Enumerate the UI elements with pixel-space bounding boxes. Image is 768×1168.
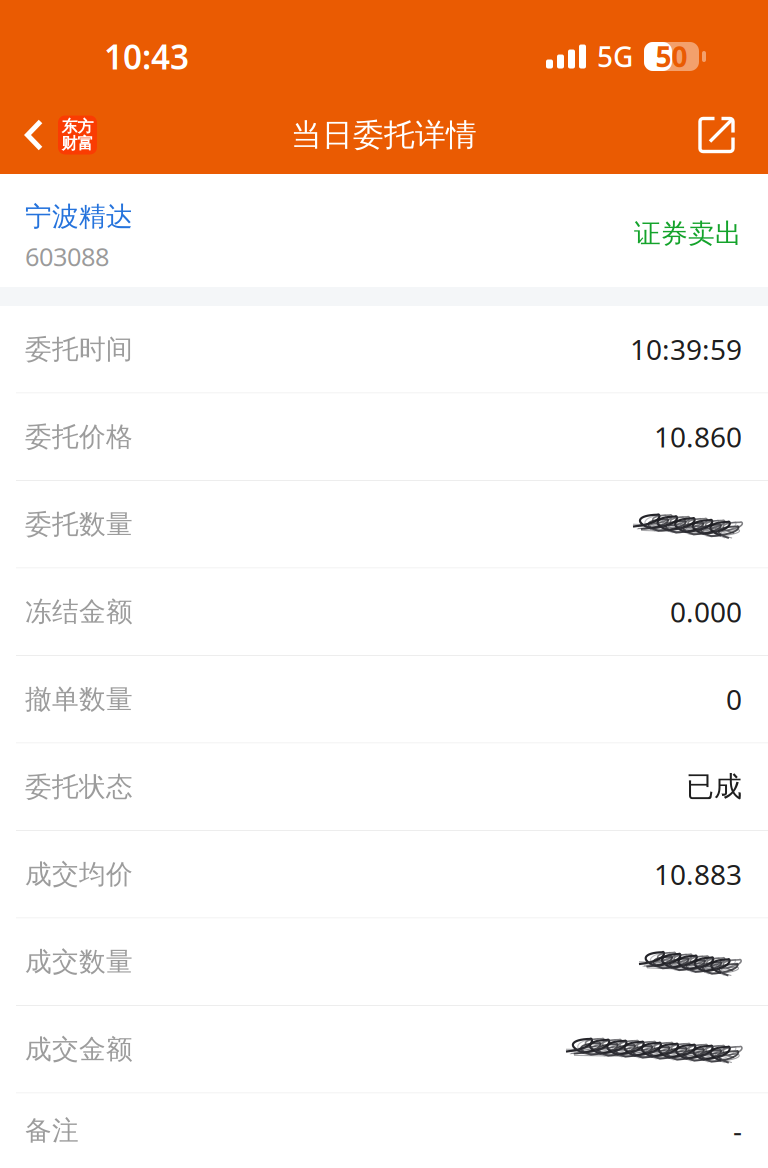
button[interactable]: Share — [682, 96, 768, 174]
staticText: 委托价格 — [25, 420, 133, 453]
staticText: 委托时间 — [25, 333, 133, 366]
button[interactable]: 委托价格 — [0, 393, 768, 481]
staticText: 备注 — [25, 1114, 79, 1147]
staticText: 0.000 — [670, 593, 742, 630]
staticText: 成交数量 — [25, 945, 133, 978]
staticText: 成交均价 — [25, 858, 133, 891]
button[interactable]: 成交数量 — [0, 918, 768, 1006]
staticText: 10.860 — [654, 418, 742, 455]
staticText: 委托数量 — [25, 508, 133, 541]
button[interactable]: 冻结金额 — [0, 568, 768, 656]
staticText: - — [733, 1112, 742, 1149]
staticText: 已成 — [686, 770, 742, 804]
staticText: 10:39:59 — [630, 331, 742, 368]
staticText: 证券卖出 — [634, 217, 742, 250]
button[interactable]: 委托状态 — [0, 743, 768, 831]
staticText: 50 — [655, 38, 687, 75]
staticText: 东方 — [61, 117, 93, 136]
button[interactable]: 委托数量 — [0, 481, 768, 568]
staticText: 成交金额 — [25, 1033, 133, 1066]
staticText: 委托状态 — [25, 770, 133, 803]
button[interactable]: 备注 — [0, 1093, 768, 1167]
staticText: 冻结金额 — [25, 595, 133, 628]
staticText: 宁波精达 — [25, 200, 133, 233]
button[interactable]: 委托时间 — [0, 306, 768, 393]
button[interactable]: 成交金额 — [0, 1006, 768, 1093]
button[interactable]: 宁波精达 — [0, 174, 768, 287]
staticText: 10:43 — [104, 34, 189, 79]
staticText: 撤单数量 — [25, 683, 133, 716]
button[interactable]: 东方 — [0, 96, 109, 174]
staticText: 5G — [597, 38, 633, 75]
button[interactable]: 成交均价 — [0, 831, 768, 918]
staticText: 当日委托详情 — [291, 116, 477, 154]
staticText: 0 — [726, 681, 742, 718]
staticText: 财富 — [61, 134, 93, 153]
staticText: 10.883 — [654, 856, 742, 893]
staticText: 603088 — [25, 240, 109, 273]
button[interactable]: 撤单数量 — [0, 656, 768, 743]
